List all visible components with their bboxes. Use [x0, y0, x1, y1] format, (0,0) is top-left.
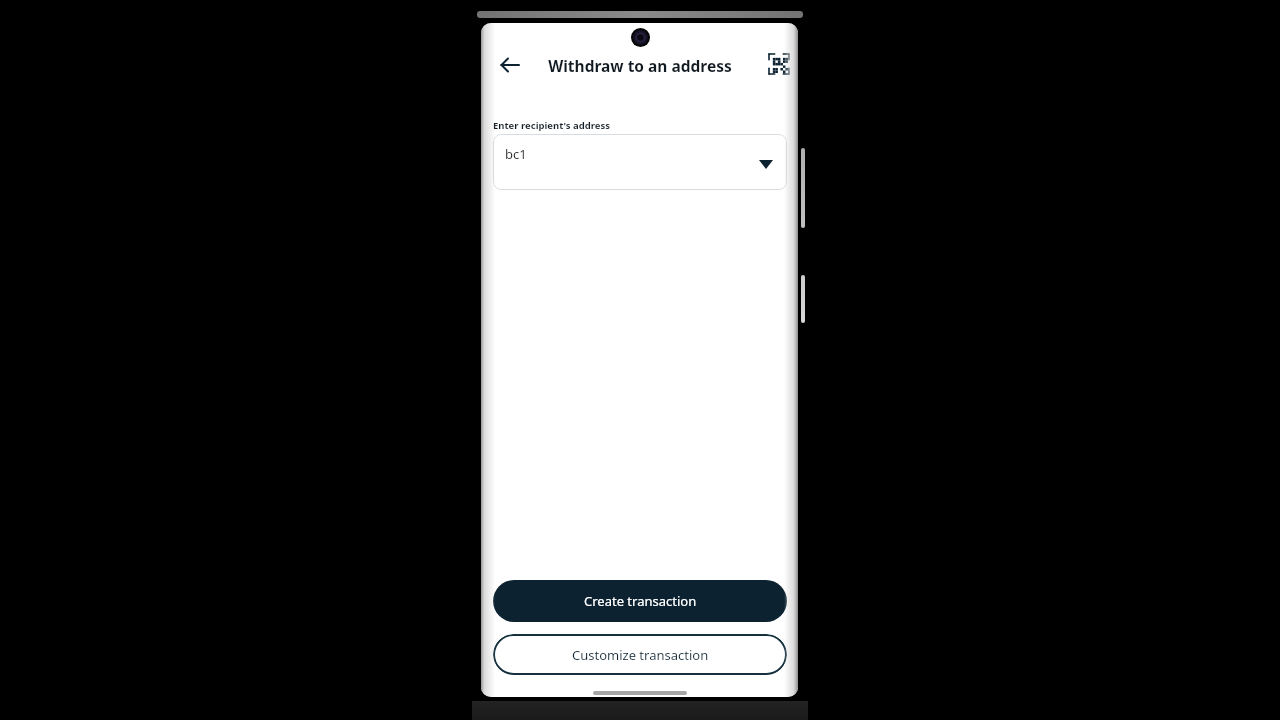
staticText: Customize transaction — [572, 646, 709, 664]
button[interactable]: Customize transaction — [493, 634, 787, 675]
staticText: Enter recipient's address — [493, 119, 610, 132]
button[interactable]: bc1 — [493, 134, 787, 190]
button[interactable]: Create transaction — [493, 580, 787, 622]
button[interactable]: Back — [492, 48, 528, 82]
staticText: Withdraw to an address — [548, 55, 732, 76]
staticText: Create transaction — [584, 592, 697, 610]
button[interactable]: Scan QR code — [764, 48, 794, 80]
staticText: bc1 — [505, 145, 527, 163]
